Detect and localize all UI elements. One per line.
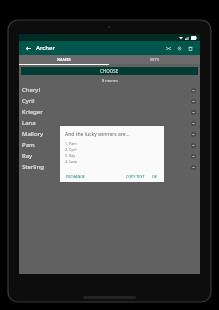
button[interactable]: Remove Cheryl — [189, 86, 197, 94]
staticText: Krieger — [22, 108, 43, 116]
staticText: 1. Pam — [65, 141, 77, 146]
button[interactable]: Lana — [19, 117, 200, 128]
staticText: Sterling — [22, 163, 44, 171]
staticText: COPY TEXT — [126, 174, 145, 179]
button[interactable]: Remove Krieger — [189, 108, 197, 116]
staticText: OK — [152, 174, 158, 179]
button[interactable]: EXCHANGE — [65, 173, 86, 180]
staticText: Lana — [22, 119, 36, 127]
staticText: 8 names — [102, 78, 118, 83]
staticText: 2. Cyril — [65, 147, 77, 152]
button[interactable]: Pam — [19, 139, 200, 150]
staticText: 4. Lana — [65, 159, 78, 164]
button[interactable]: Remove Lana — [189, 119, 197, 127]
staticText: SETS — [150, 57, 159, 62]
staticText: Cheryl — [22, 86, 40, 94]
button[interactable]: Remove Ray — [189, 152, 197, 160]
button[interactable]: Ray — [19, 150, 200, 161]
staticText: And the lucky winners are... — [65, 131, 130, 138]
button[interactable]: Delete — [185, 43, 196, 54]
button[interactable]: Remove Cyril — [189, 97, 197, 105]
staticText: Pam — [22, 141, 35, 149]
staticText: NAMES — [57, 57, 71, 62]
button[interactable]: Remove Pam — [189, 141, 197, 149]
staticText: 3. Ray — [65, 153, 76, 158]
staticText: EXCHANGE — [66, 174, 85, 179]
button[interactable]: COPY TEXT — [124, 173, 147, 180]
button[interactable]: Sterling — [19, 161, 200, 172]
button[interactable]: Remove Mallory — [189, 130, 197, 138]
button[interactable]: Shuffle — [163, 43, 174, 54]
staticText: Cyril — [22, 97, 35, 105]
button[interactable]: Krieger — [19, 106, 200, 117]
button[interactable]: SETS — [109, 55, 200, 64]
staticText: Mallory — [22, 130, 44, 138]
button[interactable]: Cheryl — [19, 84, 200, 95]
staticText: Archer — [36, 44, 56, 52]
button[interactable]: OK — [150, 173, 160, 180]
button[interactable]: Remove Sterling — [189, 163, 197, 171]
button[interactable]: Cyril — [19, 95, 200, 106]
button[interactable]: Back — [23, 43, 33, 53]
button[interactable]: CHOOSE — [21, 67, 198, 75]
button[interactable]: Settings — [174, 43, 185, 54]
button[interactable]: Mallory — [19, 128, 200, 139]
staticText: CHOOSE — [100, 68, 119, 74]
button[interactable]: NAMES — [19, 55, 109, 64]
staticText: Ray — [22, 152, 33, 160]
